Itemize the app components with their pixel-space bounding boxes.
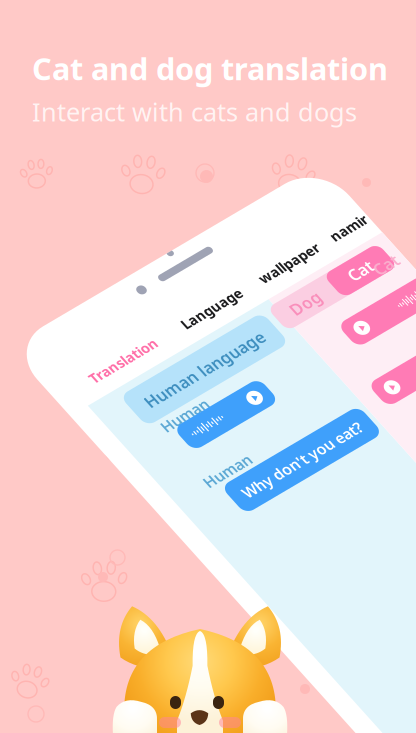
staticText: Human <box>68 559 124 580</box>
staticText: Why don't you eat? <box>92 588 238 609</box>
staticText: Dog <box>265 451 300 474</box>
staticText: Human language <box>79 457 225 480</box>
staticText: namir <box>352 409 396 428</box>
staticText: wallpaper <box>263 409 336 428</box>
staticText: Cat <box>338 451 366 474</box>
staticText: Language <box>166 409 239 428</box>
staticText: Interact with cats and dogs <box>32 95 357 128</box>
staticText: Cat and dog translation <box>32 48 388 89</box>
staticText: Translation <box>51 409 133 428</box>
